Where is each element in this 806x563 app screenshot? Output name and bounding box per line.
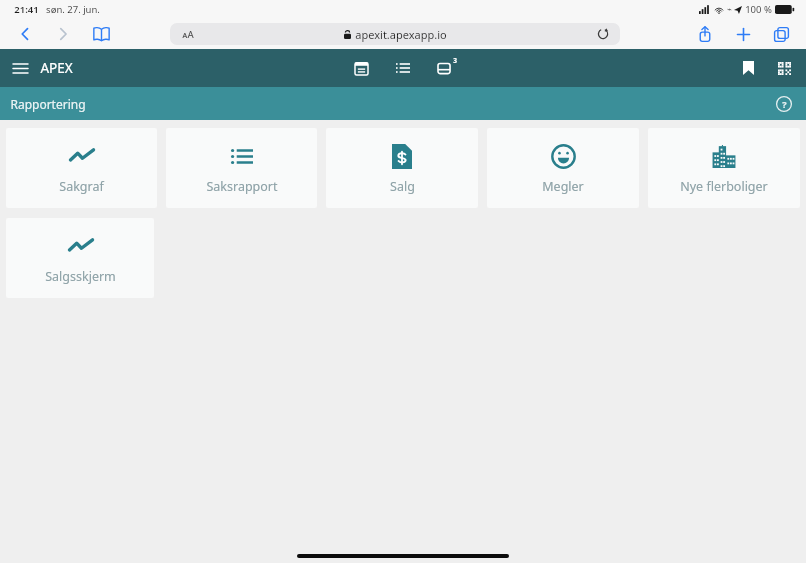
staticText: apexit.apexapp.io xyxy=(355,27,447,42)
staticText: ? xyxy=(782,98,787,110)
button[interactable]: Nye flerboliger xyxy=(648,128,800,208)
button[interactable]: Bookmarks xyxy=(86,19,116,49)
button[interactable]: Bookmark xyxy=(734,54,762,82)
staticText: 100 % xyxy=(745,3,772,16)
staticText: Megler xyxy=(542,178,584,195)
staticText: ⌁ xyxy=(727,5,732,14)
staticText: APEX xyxy=(40,59,73,77)
button[interactable]: Salgsskjerm xyxy=(6,218,154,298)
button[interactable]: Megler xyxy=(487,128,639,208)
button[interactable]: Reload xyxy=(594,25,612,43)
button[interactable]: Share xyxy=(690,19,720,49)
button[interactable]: QR code xyxy=(770,54,798,82)
staticText: Rapportering xyxy=(10,96,86,112)
staticText: Salgsskjerm xyxy=(45,268,116,285)
button[interactable]: Menu xyxy=(6,54,34,82)
button[interactable]: New tab xyxy=(728,19,758,49)
button[interactable]: List xyxy=(388,53,418,83)
button[interactable]: Salg xyxy=(326,128,478,208)
staticText: Salg xyxy=(390,178,415,195)
staticText: Nye flerboliger xyxy=(680,178,768,195)
button[interactable]: Sakgraf xyxy=(6,128,157,208)
button[interactable]: Help xyxy=(776,96,792,112)
staticText: 3 xyxy=(453,56,457,65)
staticText: Saksrapport xyxy=(206,178,278,195)
button[interactable]: ᴀA xyxy=(170,23,620,45)
button[interactable]: Tabs xyxy=(766,19,796,49)
staticText: 21:41 xyxy=(14,3,39,16)
button[interactable]: Saksrapport xyxy=(166,128,317,208)
staticText: Sakgraf xyxy=(59,178,104,195)
staticText: ᴀA xyxy=(182,28,194,41)
button[interactable]: Forward xyxy=(48,19,78,49)
button[interactable]: Back xyxy=(10,19,40,49)
button[interactable]: Messages, 3 unread xyxy=(430,53,460,83)
staticText: søn. 27. jun. xyxy=(46,3,100,16)
button[interactable]: Calendar xyxy=(346,53,376,83)
